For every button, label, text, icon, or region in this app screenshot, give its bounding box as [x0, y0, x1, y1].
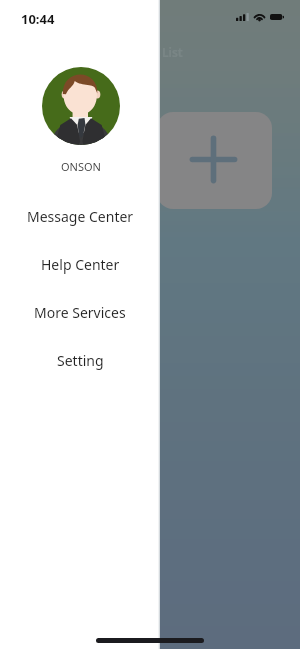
staticText: 10:44: [21, 10, 55, 28]
staticText: More Services: [34, 303, 126, 322]
button[interactable]: Setting: [0, 336, 160, 384]
button[interactable]: Message Center: [0, 192, 160, 240]
button[interactable]: Add item: [157, 112, 272, 209]
button[interactable]: More Services: [0, 288, 160, 336]
staticText: Help Center: [41, 255, 120, 274]
staticText: Message Center: [27, 207, 134, 226]
staticText: Setting: [57, 351, 104, 370]
staticText: List: [162, 44, 183, 60]
staticText: ONSON: [1, 159, 161, 174]
button[interactable]: Help Center: [0, 240, 160, 288]
